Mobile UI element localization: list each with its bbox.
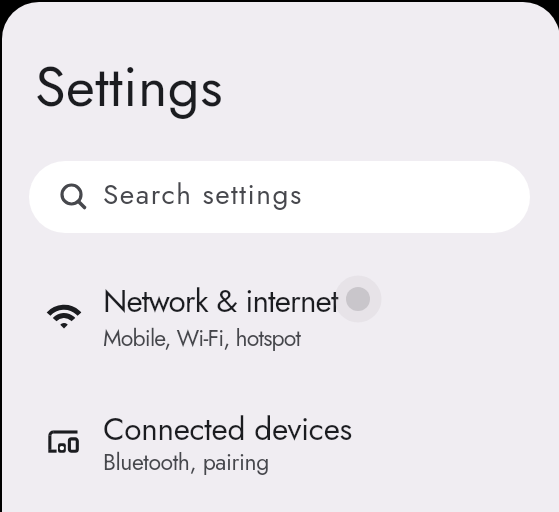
button[interactable]: Search settings bbox=[29, 161, 530, 233]
staticText: Mobile, Wi-Fi, hotspot bbox=[103, 321, 301, 354]
staticText: Connected devices bbox=[103, 406, 352, 452]
staticText: Search settings bbox=[103, 174, 303, 214]
button[interactable]: Network & internet bbox=[5, 260, 559, 375]
staticText: Network & internet bbox=[103, 278, 338, 324]
staticText: Settings bbox=[35, 46, 224, 127]
staticText: Bluetooth, pairing bbox=[103, 445, 269, 478]
button[interactable]: Connected devices bbox=[5, 390, 559, 502]
